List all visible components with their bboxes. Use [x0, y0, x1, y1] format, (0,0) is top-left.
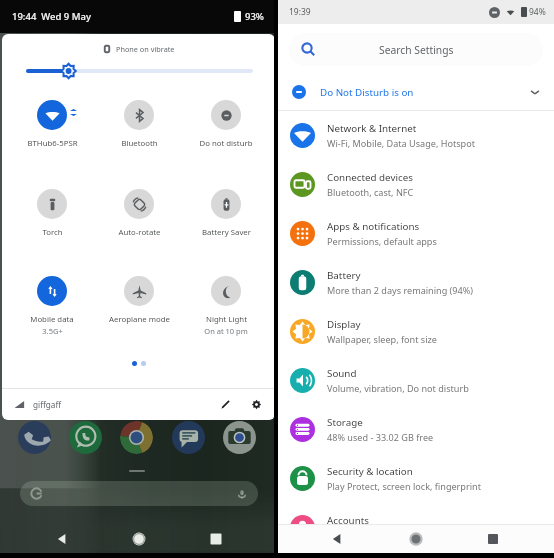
staticText: 48% used - 33.02 GB free [327, 431, 434, 443]
staticText: Bluetooth, cast, NFC [327, 186, 414, 198]
button[interactable]: Night Light [182, 276, 270, 336]
staticText: Accounts [327, 514, 369, 527]
button[interactable]: Network & Internet [278, 111, 554, 160]
staticText: 19:44 Wed 9 May [12, 10, 91, 23]
button[interactable]: Auto-rotate [95, 189, 183, 238]
staticText: Wallpaper, sleep, font size [327, 333, 437, 345]
button[interactable]: Back [50, 527, 74, 551]
button[interactable] [20, 481, 258, 506]
staticText: 94% [529, 6, 546, 18]
button[interactable]: Battery Saver [182, 189, 270, 238]
button[interactable]: Recents [481, 527, 505, 551]
staticText: Wi-Fi, Mobile, Data Usage, Hotspot [327, 137, 475, 149]
button[interactable]: Apps & notifications [278, 209, 554, 258]
button[interactable]: Settings [250, 398, 263, 411]
staticText: 3.5G+ [42, 326, 63, 336]
button[interactable]: Do not disturb [182, 100, 270, 149]
button[interactable]: Storage [278, 405, 554, 454]
button[interactable] [18, 421, 51, 454]
button[interactable]: Sound [278, 356, 554, 405]
staticText: Sound [327, 367, 357, 380]
button[interactable]: Edit [218, 397, 233, 412]
button[interactable] [69, 421, 102, 454]
button[interactable]: Home [127, 527, 151, 551]
staticText: Storage [327, 416, 363, 429]
button[interactable]: Mobile data [8, 276, 96, 336]
staticText: Aeroplane mode [109, 314, 170, 325]
staticText: On at 10 pm [204, 326, 248, 336]
button[interactable] [120, 421, 153, 454]
staticText: Network & Internet [327, 122, 417, 135]
staticText: Display [327, 318, 361, 331]
button[interactable]: Bluetooth [95, 100, 183, 149]
button[interactable]: Do Not Disturb is on [278, 74, 554, 110]
staticText: Apps & notifications [327, 220, 420, 233]
staticText: Phone on vibrate [116, 44, 175, 54]
staticText: BTHub6-5PSR [27, 138, 78, 149]
staticText: Torch [42, 227, 63, 238]
button[interactable]: Accounts [278, 503, 554, 552]
staticText: Auto-rotate [118, 227, 161, 238]
button[interactable]: Home [404, 527, 428, 551]
staticText: Mobile data [30, 314, 74, 325]
button[interactable]: Security & location [278, 454, 554, 503]
staticText: Google [327, 529, 358, 541]
button[interactable] [172, 421, 205, 454]
staticText: Do not disturb [199, 138, 253, 149]
staticText: Volume, vibration, Do not disturb [327, 382, 469, 394]
button[interactable]: Search Settings [289, 33, 543, 66]
button[interactable] [223, 421, 256, 454]
staticText: 19:39 [289, 6, 311, 18]
staticText: Battery [327, 269, 361, 282]
staticText: giffgaff [33, 399, 62, 410]
staticText: Permissions, default apps [327, 235, 437, 247]
button[interactable]: Aeroplane mode [95, 276, 183, 325]
staticText: Do Not Disturb is on [320, 86, 414, 99]
staticText: Bluetooth [121, 138, 158, 149]
button[interactable]: Display [278, 307, 554, 356]
staticText: Battery Saver [202, 227, 251, 238]
staticText: Connected devices [327, 171, 413, 184]
button[interactable]: Connected devices [278, 160, 554, 209]
button[interactable]: Battery [278, 258, 554, 307]
button[interactable]: Torch [8, 189, 96, 238]
staticText: More than 2 days remaining (94%) [327, 284, 474, 296]
staticText: 93% [245, 10, 264, 23]
button[interactable]: Recents [204, 527, 228, 551]
staticText: Search Settings [379, 43, 454, 57]
staticText: Security & location [327, 465, 413, 478]
button[interactable]: Back [325, 527, 349, 551]
staticText: Night Light [206, 314, 247, 325]
button[interactable]: BTHub6-5PSR [8, 100, 96, 149]
staticText: Play Protect, screen lock, fingerprint [327, 480, 481, 492]
